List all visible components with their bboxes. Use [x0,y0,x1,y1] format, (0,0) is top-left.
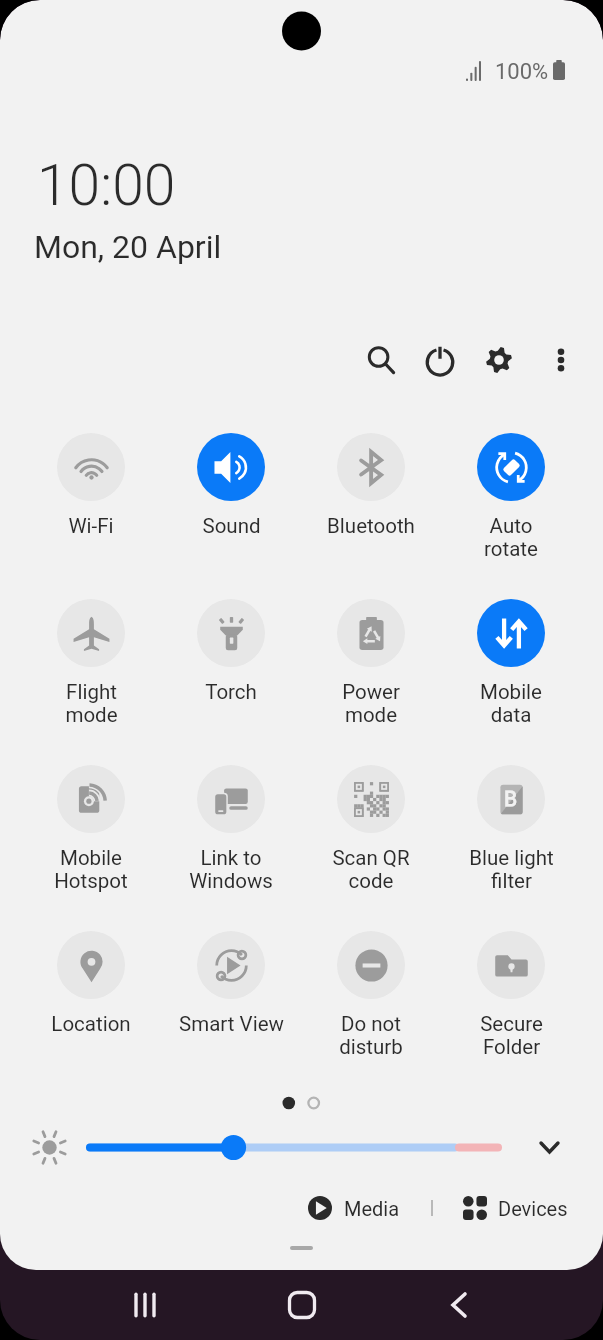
button[interactable]: Recents [115,1275,175,1335]
staticText: B [504,787,518,812]
staticText: Blue light filter [469,846,554,893]
staticText: Scan QR code [332,846,410,893]
button[interactable]: B [441,765,581,893]
staticText: Mon, 20 April [34,228,222,266]
button[interactable]: Bluetooth [301,433,441,538]
staticText: Sound [202,514,261,538]
button[interactable]: Power mode [301,599,441,727]
button[interactable]: Settings [475,336,523,384]
button[interactable]: Back [429,1275,489,1335]
staticText: Secure Folder [480,1012,543,1059]
staticText: 10:00 [37,152,176,219]
staticText: Smart View [179,1012,284,1036]
staticText: Power mode [342,680,400,727]
staticText: 100% [495,59,549,85]
button[interactable]: Wi-Fi [21,433,161,538]
staticText: Mobile Hotspot [54,846,128,893]
staticText: Location [51,1012,131,1036]
staticText: Devices [498,1197,568,1220]
button[interactable]: Torch [161,599,301,704]
button[interactable]: Flight mode [21,599,161,727]
button[interactable]: Auto rotate [441,433,581,561]
button[interactable]: Devices [463,1188,568,1228]
button[interactable]: Expand brightness settings [526,1124,573,1171]
button[interactable]: Power off [416,336,464,384]
staticText: Mobile data [480,680,542,727]
staticText: Do not disturb [339,1012,403,1059]
staticText: Media [344,1197,400,1220]
staticText: Bluetooth [327,514,415,538]
button[interactable]: Mobile data [441,599,581,727]
button[interactable]: Do not disturb [301,931,441,1059]
button[interactable]: More options [537,336,585,384]
button[interactable]: Secure Folder [441,931,581,1059]
button[interactable]: Smart View [161,931,301,1036]
staticText: Torch [205,680,257,704]
button[interactable]: Mobile Hotspot [21,765,161,893]
button[interactable]: Scan QR code [301,765,441,893]
staticText: Link to Windows [189,846,273,893]
button[interactable]: Link to Windows [161,765,301,893]
button[interactable]: Location [21,931,161,1036]
button[interactable]: Home [272,1275,332,1335]
staticText: Auto rotate [484,514,538,561]
staticText: Flight mode [65,680,118,727]
button[interactable]: Media [308,1188,400,1228]
button[interactable]: Sound [161,433,301,538]
button[interactable]: Search [357,336,405,384]
staticText: Wi-Fi [68,514,114,538]
